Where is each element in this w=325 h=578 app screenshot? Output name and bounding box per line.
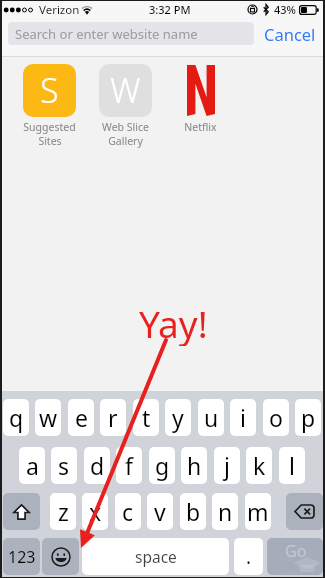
button[interactable]: o: [263, 399, 289, 436]
button[interactable]: Search or enter website name: [8, 22, 254, 45]
staticText: v: [154, 496, 166, 527]
staticText: u: [204, 402, 219, 433]
staticText: l: [289, 450, 295, 481]
staticText: p: [301, 402, 316, 433]
staticText: z: [58, 496, 69, 527]
button[interactable]: Netflix: [172, 64, 229, 134]
button[interactable]: f: [116, 447, 142, 484]
button[interactable]: d: [84, 447, 110, 484]
staticText: S: [40, 67, 59, 113]
button[interactable]: u: [198, 399, 224, 436]
staticText: Gallery: [108, 134, 143, 148]
staticText: i: [240, 402, 246, 433]
staticText: e: [75, 402, 88, 433]
button[interactable]: Cancel: [261, 21, 319, 46]
staticText: Go: [285, 540, 307, 562]
button[interactable]: z: [50, 493, 76, 530]
staticText: Verizon: [39, 2, 80, 18]
staticText: s: [58, 450, 70, 481]
staticText: Web Slice: [102, 120, 149, 134]
button[interactable]: Emoji keyboard: [42, 538, 79, 575]
button[interactable]: s: [51, 447, 77, 484]
button[interactable]: w: [35, 399, 61, 436]
button[interactable]: Shift: [3, 493, 40, 530]
staticText: d: [90, 450, 105, 481]
button[interactable]: 123: [3, 538, 40, 575]
staticText: Search or enter website name: [15, 25, 198, 43]
staticText: m: [247, 496, 269, 527]
staticText: W: [110, 67, 141, 113]
button[interactable]: i: [230, 399, 256, 436]
button[interactable]: k: [246, 447, 272, 484]
button[interactable]: Backspace: [286, 493, 323, 530]
staticText: h: [187, 450, 202, 481]
staticText: Netflix: [184, 120, 217, 134]
button[interactable]: g: [149, 447, 175, 484]
staticText: j: [224, 450, 230, 481]
button[interactable]: l: [279, 447, 305, 484]
button[interactable]: .: [234, 538, 263, 575]
staticText: a: [26, 450, 39, 481]
staticText: t: [142, 402, 151, 433]
staticText: 123: [8, 546, 36, 568]
button[interactable]: x: [82, 493, 108, 530]
button[interactable]: y: [165, 399, 191, 436]
button[interactable]: c: [115, 493, 141, 530]
staticText: n: [218, 496, 233, 527]
button[interactable]: n: [212, 493, 238, 530]
button[interactable]: W: [97, 64, 154, 148]
staticText: Cancel: [264, 23, 316, 45]
staticText: 43%: [274, 2, 296, 17]
button[interactable]: b: [180, 493, 206, 530]
button[interactable]: r: [100, 399, 126, 436]
button[interactable]: t: [133, 399, 159, 436]
staticText: r: [108, 402, 118, 433]
staticText: x: [89, 496, 102, 527]
staticText: c: [122, 496, 134, 527]
button[interactable]: j: [214, 447, 240, 484]
button[interactable]: Go: [267, 538, 323, 575]
button[interactable]: q: [3, 399, 29, 436]
staticText: space: [135, 546, 177, 567]
staticText: w: [39, 402, 58, 433]
button[interactable]: h: [181, 447, 207, 484]
staticText: f: [125, 450, 133, 481]
button[interactable]: v: [147, 493, 173, 530]
staticText: .: [246, 544, 252, 570]
staticText: q: [9, 402, 24, 433]
staticText: Yay!: [139, 298, 208, 346]
staticText: g: [155, 450, 170, 481]
staticText: y: [172, 402, 184, 433]
button[interactable]: space: [82, 538, 229, 575]
staticText: 3:32 PM: [149, 2, 191, 17]
button[interactable]: S: [21, 64, 78, 148]
button[interactable]: m: [245, 493, 271, 530]
staticText: Sites: [38, 134, 62, 148]
button[interactable]: e: [68, 399, 94, 436]
staticText: k: [253, 450, 266, 481]
button[interactable]: a: [19, 447, 45, 484]
button[interactable]: p: [295, 399, 321, 436]
staticText: b: [186, 496, 201, 527]
staticText: o: [269, 402, 283, 433]
staticText: Suggested: [23, 120, 76, 134]
